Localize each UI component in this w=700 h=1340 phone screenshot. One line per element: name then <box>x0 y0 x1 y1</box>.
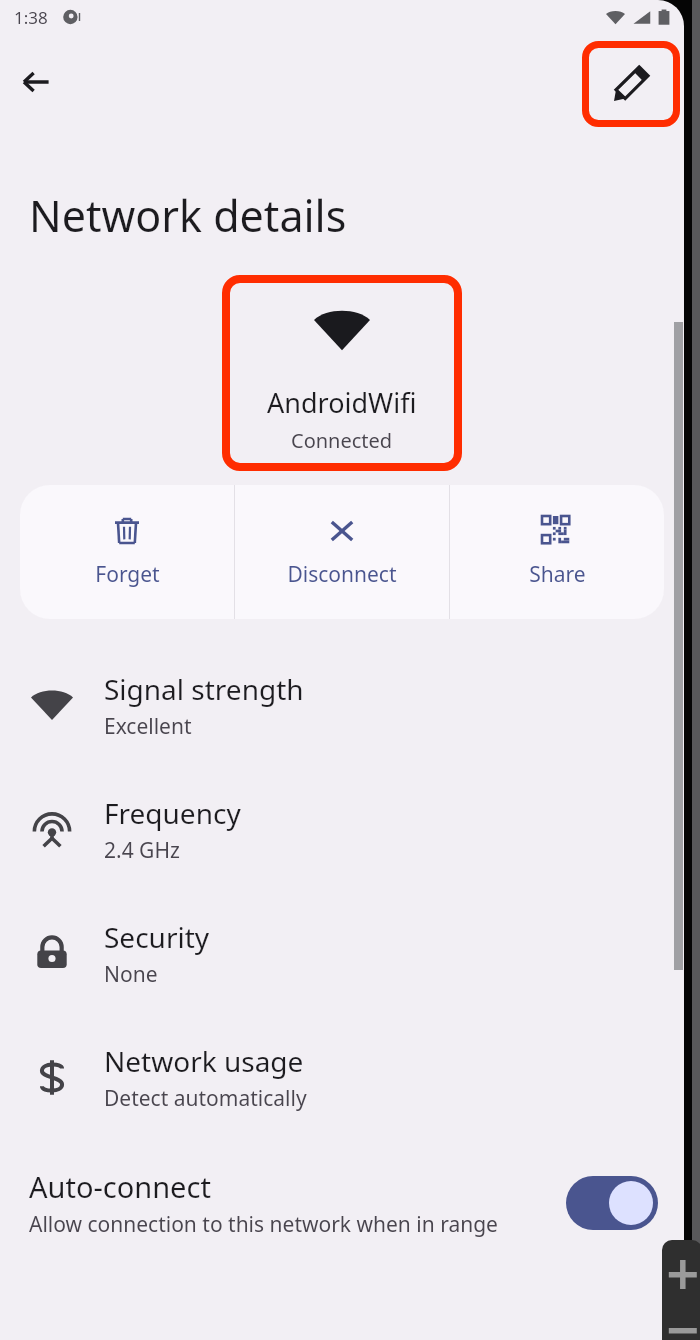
staticText: Signal strength <box>104 670 304 708</box>
staticText: 1:38 <box>14 6 48 29</box>
button[interactable]: Frequency <box>0 767 684 891</box>
staticText: Network details <box>29 186 347 245</box>
button[interactable]: Share <box>450 485 664 619</box>
staticText: Detect automatically <box>104 1084 307 1113</box>
staticText: Share <box>529 560 586 589</box>
button[interactable]: AndroidWifi <box>222 275 462 471</box>
button[interactable]: Back <box>10 56 62 108</box>
staticText: Forget <box>95 560 160 589</box>
button[interactable]: Edit <box>582 41 680 127</box>
button[interactable]: Disconnect <box>235 485 449 619</box>
staticText: 2.4 GHz <box>104 836 180 865</box>
staticText: Excellent <box>104 712 192 741</box>
staticText: AndroidWifi <box>267 384 417 421</box>
staticText: Connected <box>291 427 393 454</box>
button[interactable]: Security <box>0 891 684 1015</box>
staticText: Auto-connect <box>29 1167 211 1206</box>
staticText: Allow connection to this network when in… <box>29 1210 498 1239</box>
button[interactable]: Auto-connect <box>0 1153 684 1253</box>
staticText: None <box>104 960 158 989</box>
button[interactable]: Network usage <box>0 1015 684 1139</box>
staticText: Security <box>104 918 210 956</box>
staticText: Disconnect <box>287 560 397 589</box>
button[interactable]: Forget <box>20 485 234 619</box>
staticText: Network usage <box>104 1042 304 1080</box>
button[interactable]: Auto-connect toggle <box>566 1176 658 1230</box>
staticText: Frequency <box>104 794 241 832</box>
button[interactable]: Signal strength <box>0 643 684 767</box>
